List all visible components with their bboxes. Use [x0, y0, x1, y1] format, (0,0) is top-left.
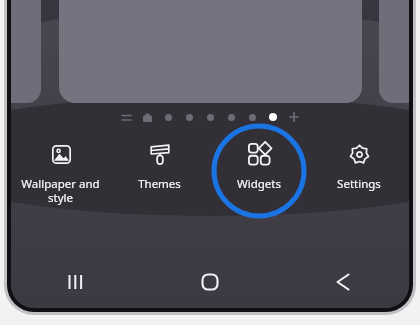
button[interactable]: Add home screen page	[285, 108, 303, 126]
button[interactable]: Themes	[110, 131, 209, 192]
button[interactable]	[59, 0, 362, 103]
button[interactable]: Current home screen page	[264, 108, 282, 126]
button[interactable]	[379, 0, 409, 103]
button[interactable]: Home screen page	[222, 108, 240, 126]
button[interactable]: Home screen page	[159, 108, 177, 126]
button[interactable]: Home screen page	[201, 108, 219, 126]
button[interactable]: Settings	[309, 131, 409, 192]
staticText: Wallpaper and style	[21, 176, 100, 206]
staticText: Widgets	[237, 176, 281, 192]
button[interactable]: Home screen page	[243, 108, 261, 126]
button[interactable]: Home screen page	[180, 108, 198, 126]
staticText: Themes	[138, 176, 181, 192]
button[interactable]: Home	[143, 260, 276, 304]
button[interactable]: Main home screen	[138, 108, 156, 126]
button[interactable]	[11, 0, 41, 103]
button[interactable]: Recents	[11, 260, 143, 304]
button[interactable]: Back	[276, 260, 409, 304]
staticText: Settings	[337, 176, 381, 192]
button[interactable]: Widgets	[209, 131, 309, 192]
button[interactable]: Home screen settings	[117, 108, 135, 126]
button[interactable]: Wallpaper and style	[11, 131, 110, 206]
